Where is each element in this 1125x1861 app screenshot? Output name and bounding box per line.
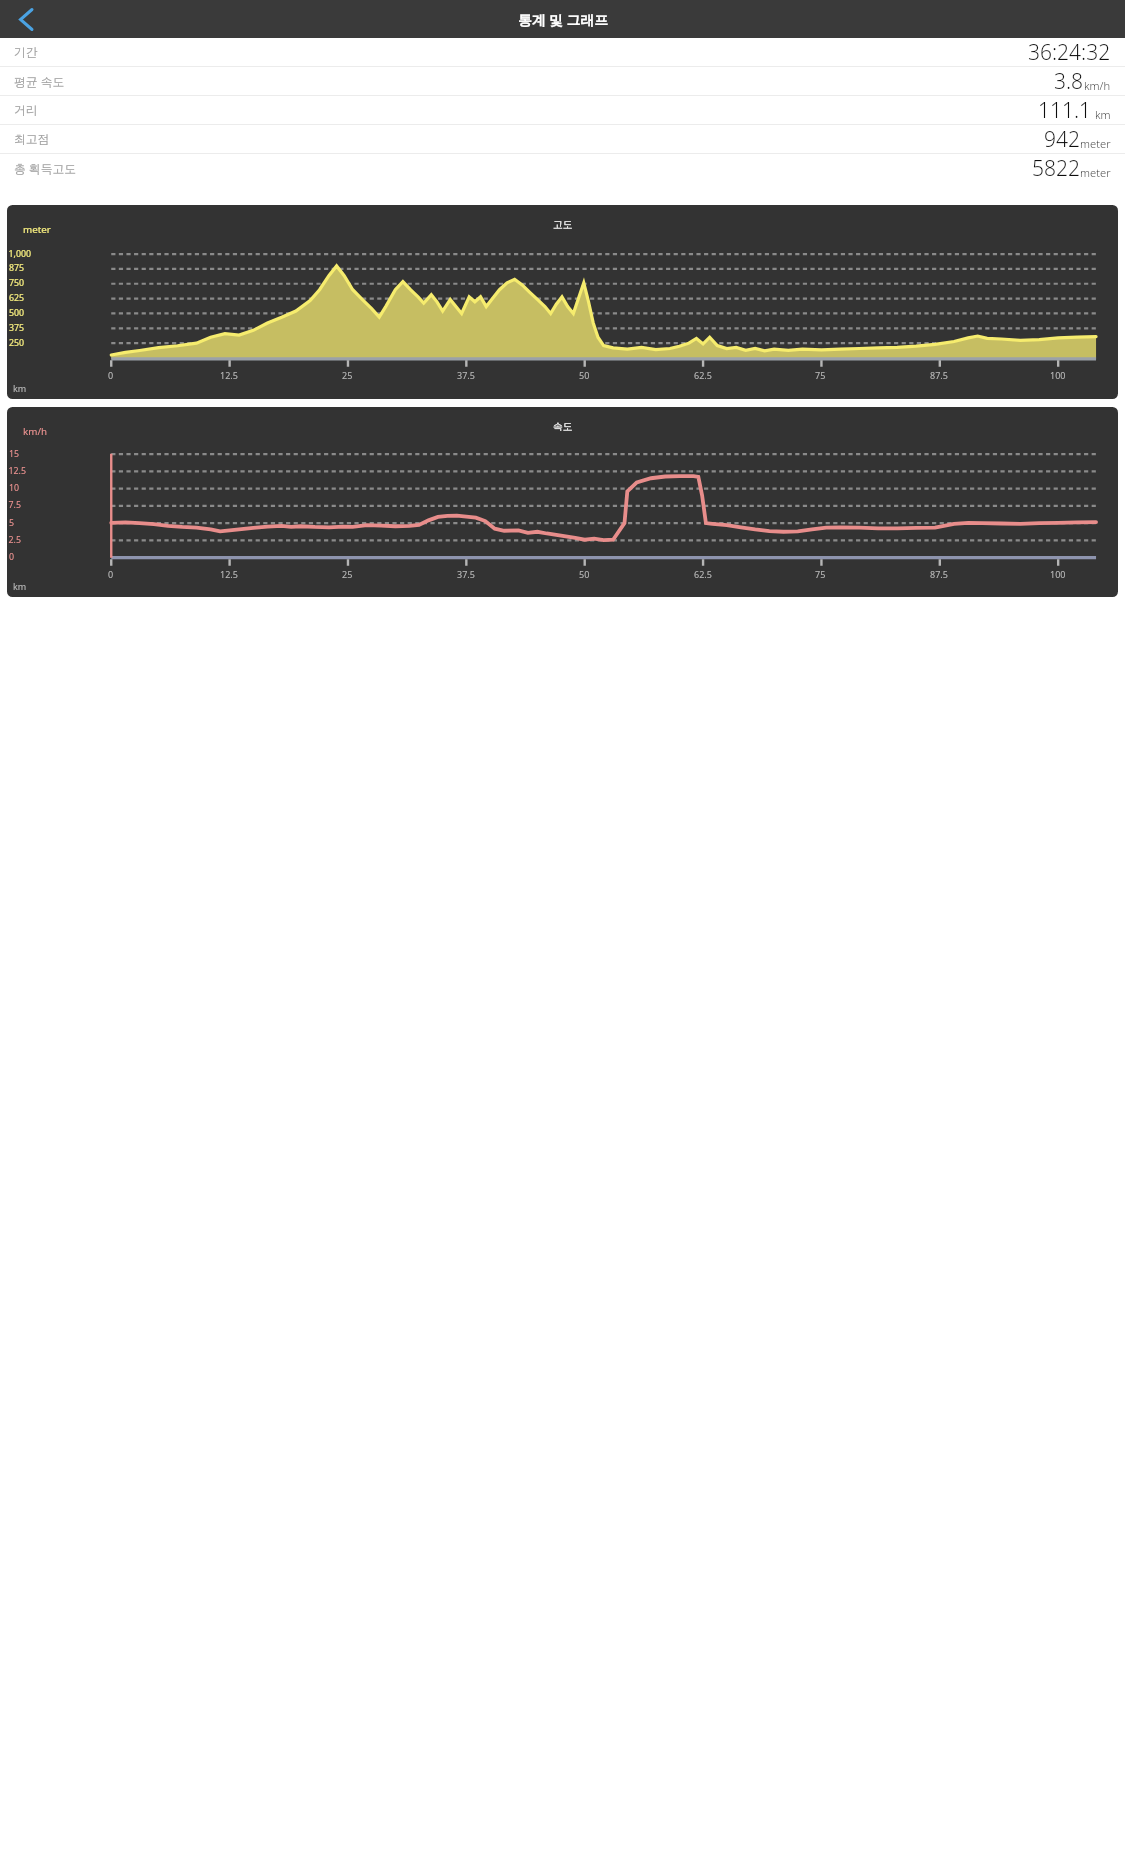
staticText: km/h — [1084, 78, 1111, 93]
staticText: km — [13, 382, 27, 394]
button[interactable]: 기간 — [0, 38, 1125, 66]
staticText: km — [13, 580, 27, 592]
staticText: 111.1 — [1038, 96, 1092, 124]
button[interactable]: Back — [4, 0, 48, 38]
staticText: km — [1092, 107, 1111, 122]
staticText: 100 — [1050, 568, 1066, 580]
staticText: 100 — [1050, 369, 1066, 381]
staticText: 7.5 — [8, 499, 21, 511]
staticText: 5 — [8, 517, 14, 529]
staticText: 75 — [815, 369, 826, 381]
staticText: 총 획득고도 — [14, 160, 77, 176]
button[interactable]: 총 획득고도 — [0, 154, 1125, 182]
button[interactable]: 평균 속도 — [0, 67, 1125, 95]
staticText: 500 — [8, 307, 24, 319]
staticText: 942 — [1044, 125, 1080, 153]
staticText: 62.5 — [694, 369, 712, 381]
staticText: 고도 — [553, 219, 573, 231]
staticText: 375 — [8, 322, 24, 334]
staticText: 75 — [815, 568, 826, 580]
staticText: 36:24:32 — [1028, 38, 1111, 66]
staticText: 0 — [108, 369, 114, 381]
button[interactable]: 고도 — [7, 205, 1118, 399]
staticText: 0 — [8, 551, 14, 563]
button[interactable]: 최고점 — [0, 125, 1125, 153]
staticText: meter — [1080, 165, 1111, 180]
staticText: 25 — [342, 369, 353, 381]
staticText: 25 — [342, 568, 353, 580]
staticText: 평균 속도 — [14, 73, 65, 89]
staticText: 12.5 — [220, 369, 238, 381]
staticText: meter — [1080, 136, 1111, 151]
staticText: 최고점 — [14, 132, 50, 147]
staticText: 3.8 — [1054, 67, 1084, 95]
staticText: 2.5 — [8, 534, 21, 546]
staticText: 거리 — [14, 103, 38, 118]
staticText: 750 — [8, 277, 24, 289]
staticText: 625 — [8, 292, 24, 304]
staticText: 0 — [108, 568, 114, 580]
staticText: 87.5 — [930, 369, 948, 381]
staticText: 87.5 — [930, 568, 948, 580]
staticText: 1,000 — [8, 248, 31, 260]
staticText: 12.5 — [220, 568, 238, 580]
button[interactable]: 속도 — [7, 407, 1118, 597]
staticText: 10 — [8, 482, 19, 494]
staticText: 37.5 — [457, 568, 475, 580]
button[interactable]: 거리 — [0, 96, 1125, 124]
staticText: 50 — [579, 369, 590, 381]
staticText: 250 — [8, 337, 24, 349]
staticText: meter — [23, 223, 51, 236]
staticText: 통계 및 그래프 — [518, 10, 608, 29]
staticText: 50 — [579, 568, 590, 580]
staticText: km/h — [23, 425, 48, 438]
staticText: 37.5 — [457, 369, 475, 381]
staticText: 기간 — [14, 45, 38, 60]
staticText: 12.5 — [8, 465, 26, 477]
staticText: 62.5 — [694, 568, 712, 580]
staticText: 속도 — [553, 421, 573, 433]
staticText: 875 — [8, 262, 24, 274]
staticText: 15 — [8, 448, 19, 460]
staticText: 5822 — [1032, 154, 1080, 182]
